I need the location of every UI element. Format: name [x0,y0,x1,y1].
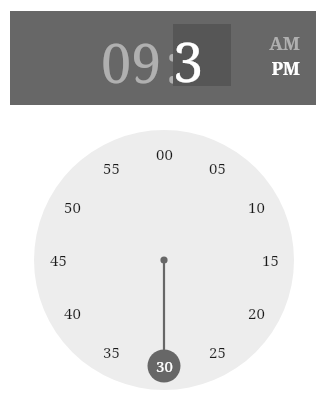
staticText: PM [271,56,300,81]
staticText: 05 [209,158,226,178]
staticText: 45 [50,250,67,270]
staticText: 35 [103,342,120,362]
button[interactable]: 40 [57,298,87,328]
staticText: 50 [64,197,81,217]
button[interactable]: 00 [149,139,179,169]
button[interactable]: 20 [241,298,271,328]
button[interactable]: 35 [96,337,126,367]
staticText: 00 [156,144,173,164]
button[interactable]: 50 [57,192,87,222]
button[interactable]: 30 [173,24,231,86]
button[interactable]: 10 [241,192,271,222]
button[interactable]: 09 [95,25,167,87]
staticText: 20 [248,303,265,323]
button[interactable]: 15 [255,245,285,275]
staticText: AM [269,31,300,55]
staticText: 55 [103,158,120,178]
staticText: 15 [262,250,279,270]
staticText: : [165,25,175,87]
button[interactable]: 25 [202,337,232,367]
staticText: 09 [101,25,162,87]
button[interactable]: 45 [43,245,73,275]
staticText: 25 [209,342,226,362]
button[interactable]: 30 [149,351,179,381]
staticText: 30 [156,356,173,376]
button[interactable]: PM [250,55,300,81]
button[interactable]: 55 [96,153,126,183]
button[interactable]: Minute selection dial [34,130,294,390]
staticText: 40 [64,303,81,323]
button[interactable]: AM [250,31,300,55]
staticText: 30 [173,24,231,86]
button[interactable]: 05 [202,153,232,183]
staticText: 10 [248,197,265,217]
